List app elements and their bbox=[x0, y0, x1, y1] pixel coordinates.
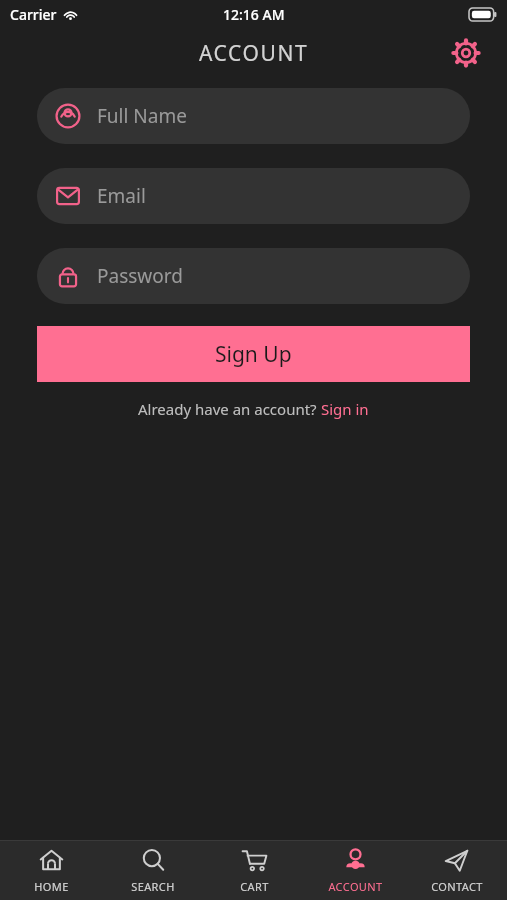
staticText: SEARCH bbox=[131, 879, 175, 894]
button[interactable]: Full Name bbox=[37, 88, 470, 144]
button[interactable]: ACCOUNT bbox=[305, 841, 406, 900]
staticText: Full Name bbox=[97, 103, 187, 129]
button[interactable]: Password bbox=[37, 248, 470, 304]
button[interactable]: SEARCH bbox=[102, 841, 204, 900]
staticText: Already have an account? bbox=[138, 399, 321, 419]
staticText: 12:16 AM bbox=[223, 5, 285, 24]
button[interactable]: Sign Up bbox=[37, 326, 470, 382]
staticText: CONTACT bbox=[431, 879, 483, 894]
button[interactable]: Sign in bbox=[321, 399, 369, 419]
button[interactable]: CART bbox=[204, 841, 305, 900]
button[interactable]: Settings bbox=[449, 36, 483, 70]
staticText: Sign in bbox=[321, 399, 369, 419]
staticText: ACCOUNT bbox=[199, 39, 309, 68]
button[interactable]: CONTACT bbox=[406, 841, 507, 900]
button[interactable]: Email bbox=[37, 168, 470, 224]
staticText: CART bbox=[240, 879, 269, 894]
staticText: Password bbox=[97, 263, 183, 289]
staticText: Carrier bbox=[10, 5, 57, 24]
staticText: ACCOUNT bbox=[328, 879, 383, 894]
staticText: Sign Up bbox=[215, 340, 292, 369]
button[interactable]: HOME bbox=[0, 841, 102, 900]
staticText: Email bbox=[97, 183, 146, 209]
staticText: HOME bbox=[34, 879, 69, 894]
